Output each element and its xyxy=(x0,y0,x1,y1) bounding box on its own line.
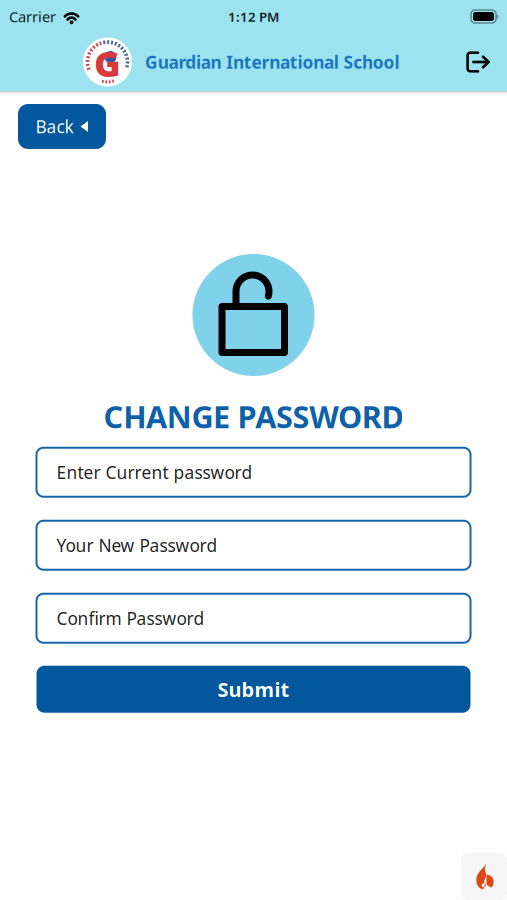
staticText: Submit xyxy=(217,676,289,702)
staticText: CHANGE PASSWORD xyxy=(104,396,403,437)
staticText: Confirm Password xyxy=(56,607,204,630)
button[interactable]: Your New Password xyxy=(36,521,470,570)
button[interactable]: Confirm Password xyxy=(36,594,470,643)
button[interactable]: Back xyxy=(18,104,106,149)
staticText: Guardian International School xyxy=(145,50,399,73)
staticText: Back xyxy=(35,115,73,138)
staticText: 1:12 PM xyxy=(228,8,279,25)
button[interactable]: Log out xyxy=(466,33,490,90)
button[interactable]: Debug toolbar xyxy=(461,853,507,900)
staticText: Enter Current password xyxy=(56,461,252,484)
staticText: Your New Password xyxy=(56,534,217,557)
button[interactable]: Submit xyxy=(36,666,470,713)
button[interactable]: Enter Current password xyxy=(36,448,470,497)
staticText: G xyxy=(94,39,121,87)
staticText: Carrier xyxy=(9,7,56,26)
